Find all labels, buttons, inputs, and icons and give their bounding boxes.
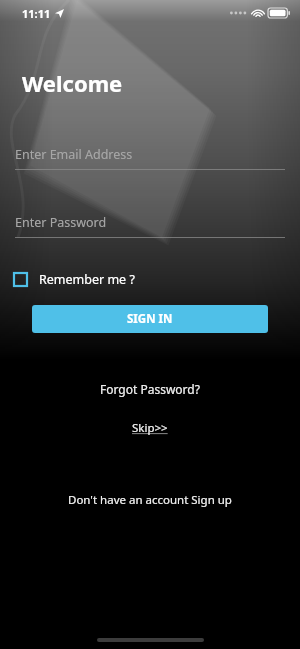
button[interactable]: Skip>> [128,416,172,440]
staticText: Enter Email Address [15,146,133,163]
button[interactable]: Enter Password [15,214,285,238]
button[interactable]: Remember me ? [14,271,135,288]
staticText: Enter Password [15,214,107,231]
button[interactable]: Enter Email Address [15,146,285,170]
staticText: Remember me ? [39,271,135,288]
button[interactable]: Forgot Password? [96,377,204,401]
staticText: SIGN IN [127,311,173,327]
staticText: 11:11 [22,6,51,21]
button[interactable]: SIGN IN [32,305,268,333]
staticText: Welcome [22,68,123,98]
button[interactable]: Don't have an account Sign up [64,488,236,512]
